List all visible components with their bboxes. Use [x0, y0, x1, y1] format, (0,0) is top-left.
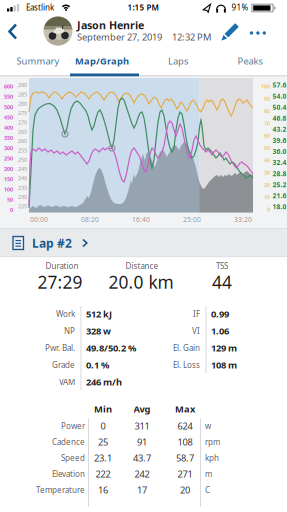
staticText: 91% [231, 2, 248, 13]
staticText: 50 [7, 196, 13, 203]
staticText: 328 w [86, 325, 111, 337]
staticText: Jason Henrie [77, 18, 144, 32]
staticText: 12:32 PM [172, 31, 211, 43]
staticText: 255 [18, 147, 27, 154]
staticText: 129 m [211, 342, 237, 354]
staticText: Lap #2 [32, 235, 72, 251]
staticText: 40 [264, 157, 270, 164]
staticText: rpm [205, 437, 220, 447]
staticText: 08:20 [81, 215, 99, 224]
staticText: 271 [177, 468, 192, 480]
staticText: 260 [18, 137, 27, 144]
staticText: 512 kJ [86, 308, 112, 320]
staticText: 450 [4, 114, 13, 121]
staticText: 600 [4, 83, 13, 90]
staticText: 235 [18, 184, 27, 191]
staticText: TSS [216, 261, 228, 271]
staticText: Summary [16, 55, 59, 67]
staticText: 70 [264, 120, 270, 127]
staticText: 17 [137, 484, 147, 496]
staticText: Temperature [36, 485, 85, 495]
staticText: 550 [4, 93, 13, 100]
staticText: 265 [18, 128, 27, 135]
staticText: 39.6 [272, 136, 286, 145]
staticText: Peaks [237, 55, 262, 67]
staticText: 18.0 [272, 202, 286, 211]
staticText: El. Gain [173, 343, 200, 353]
staticText: 44 [212, 270, 232, 293]
staticText: 10 [264, 194, 270, 201]
staticText: VAM [59, 377, 75, 387]
staticText: 91 [137, 436, 147, 448]
staticText: 33:20 [234, 215, 252, 224]
staticText: 350 [4, 134, 13, 141]
staticText: 300 [4, 145, 13, 152]
staticText: VI [192, 326, 200, 336]
staticText: 624 [177, 420, 192, 432]
staticText: 60 [264, 132, 270, 139]
staticText: 00:00 [30, 215, 48, 224]
staticText: 0 [100, 420, 105, 432]
staticText: 150 [4, 176, 13, 183]
staticText: 20 [180, 484, 190, 496]
staticText: 240 [18, 175, 27, 182]
staticText: Laps [168, 55, 188, 67]
staticText: 400 [4, 124, 13, 131]
staticText: 285 [18, 91, 27, 98]
staticText: 311 [134, 420, 149, 432]
staticText: 230 [18, 193, 27, 200]
staticText: 80 [264, 108, 270, 115]
staticText: 46.8 [272, 114, 286, 123]
staticText: Map/Graph [75, 55, 129, 67]
staticText: 225 [18, 203, 27, 210]
staticText: 222 [95, 468, 110, 480]
staticText: 270 [18, 119, 27, 126]
staticText: 242 [134, 468, 149, 480]
staticText: 245 [18, 165, 27, 172]
staticText: 21.6 [272, 191, 286, 200]
staticText: Work [56, 309, 75, 319]
staticText: Distance [125, 261, 158, 271]
staticText: 90 [264, 95, 270, 102]
staticText: Power [61, 421, 85, 431]
staticText: Min [94, 403, 112, 415]
staticText: 16 [98, 484, 108, 496]
staticText: 23.1 [94, 452, 112, 464]
staticText: 32.4 [272, 158, 286, 167]
staticText: 108 [177, 436, 192, 448]
staticText: 200 [4, 165, 13, 172]
staticText: 250 [4, 155, 13, 162]
staticText: 100 [261, 83, 270, 90]
staticText: Duration [45, 261, 78, 271]
staticText: 1:15 PM [127, 2, 158, 13]
staticText: 50.4 [272, 103, 286, 112]
staticText: NP [64, 326, 75, 336]
staticText: 1.06 [211, 325, 229, 337]
staticText: 43.7 [133, 452, 151, 464]
staticText: 25 [98, 436, 108, 448]
staticText: Speed [61, 453, 85, 463]
staticText: Grade [52, 360, 75, 370]
staticText: 20.0 km [108, 270, 173, 293]
staticText: 54.0 [272, 92, 286, 100]
staticText: 275 [18, 109, 27, 116]
staticText: IF [193, 309, 200, 319]
staticText: 280 [18, 100, 27, 107]
staticText: 100 [4, 186, 13, 193]
staticText: 25:00 [183, 215, 201, 224]
staticText: September 27, 2019 [77, 31, 162, 43]
staticText: m [205, 469, 212, 479]
staticText: C [205, 485, 210, 495]
staticText: 0 [10, 206, 13, 213]
staticText: Cadence [52, 437, 85, 447]
staticText: 500 [4, 103, 13, 111]
staticText: 30 [264, 169, 270, 176]
staticText: 0.1 % [86, 359, 109, 371]
staticText: El. Loss [173, 360, 200, 370]
staticText: w [205, 421, 211, 431]
staticText: 250 [18, 156, 27, 163]
staticText: 20 [264, 181, 270, 188]
staticText: 27:29 [37, 270, 82, 293]
staticText: Max [175, 403, 195, 415]
staticText: Pwr. Bal. [45, 343, 75, 353]
